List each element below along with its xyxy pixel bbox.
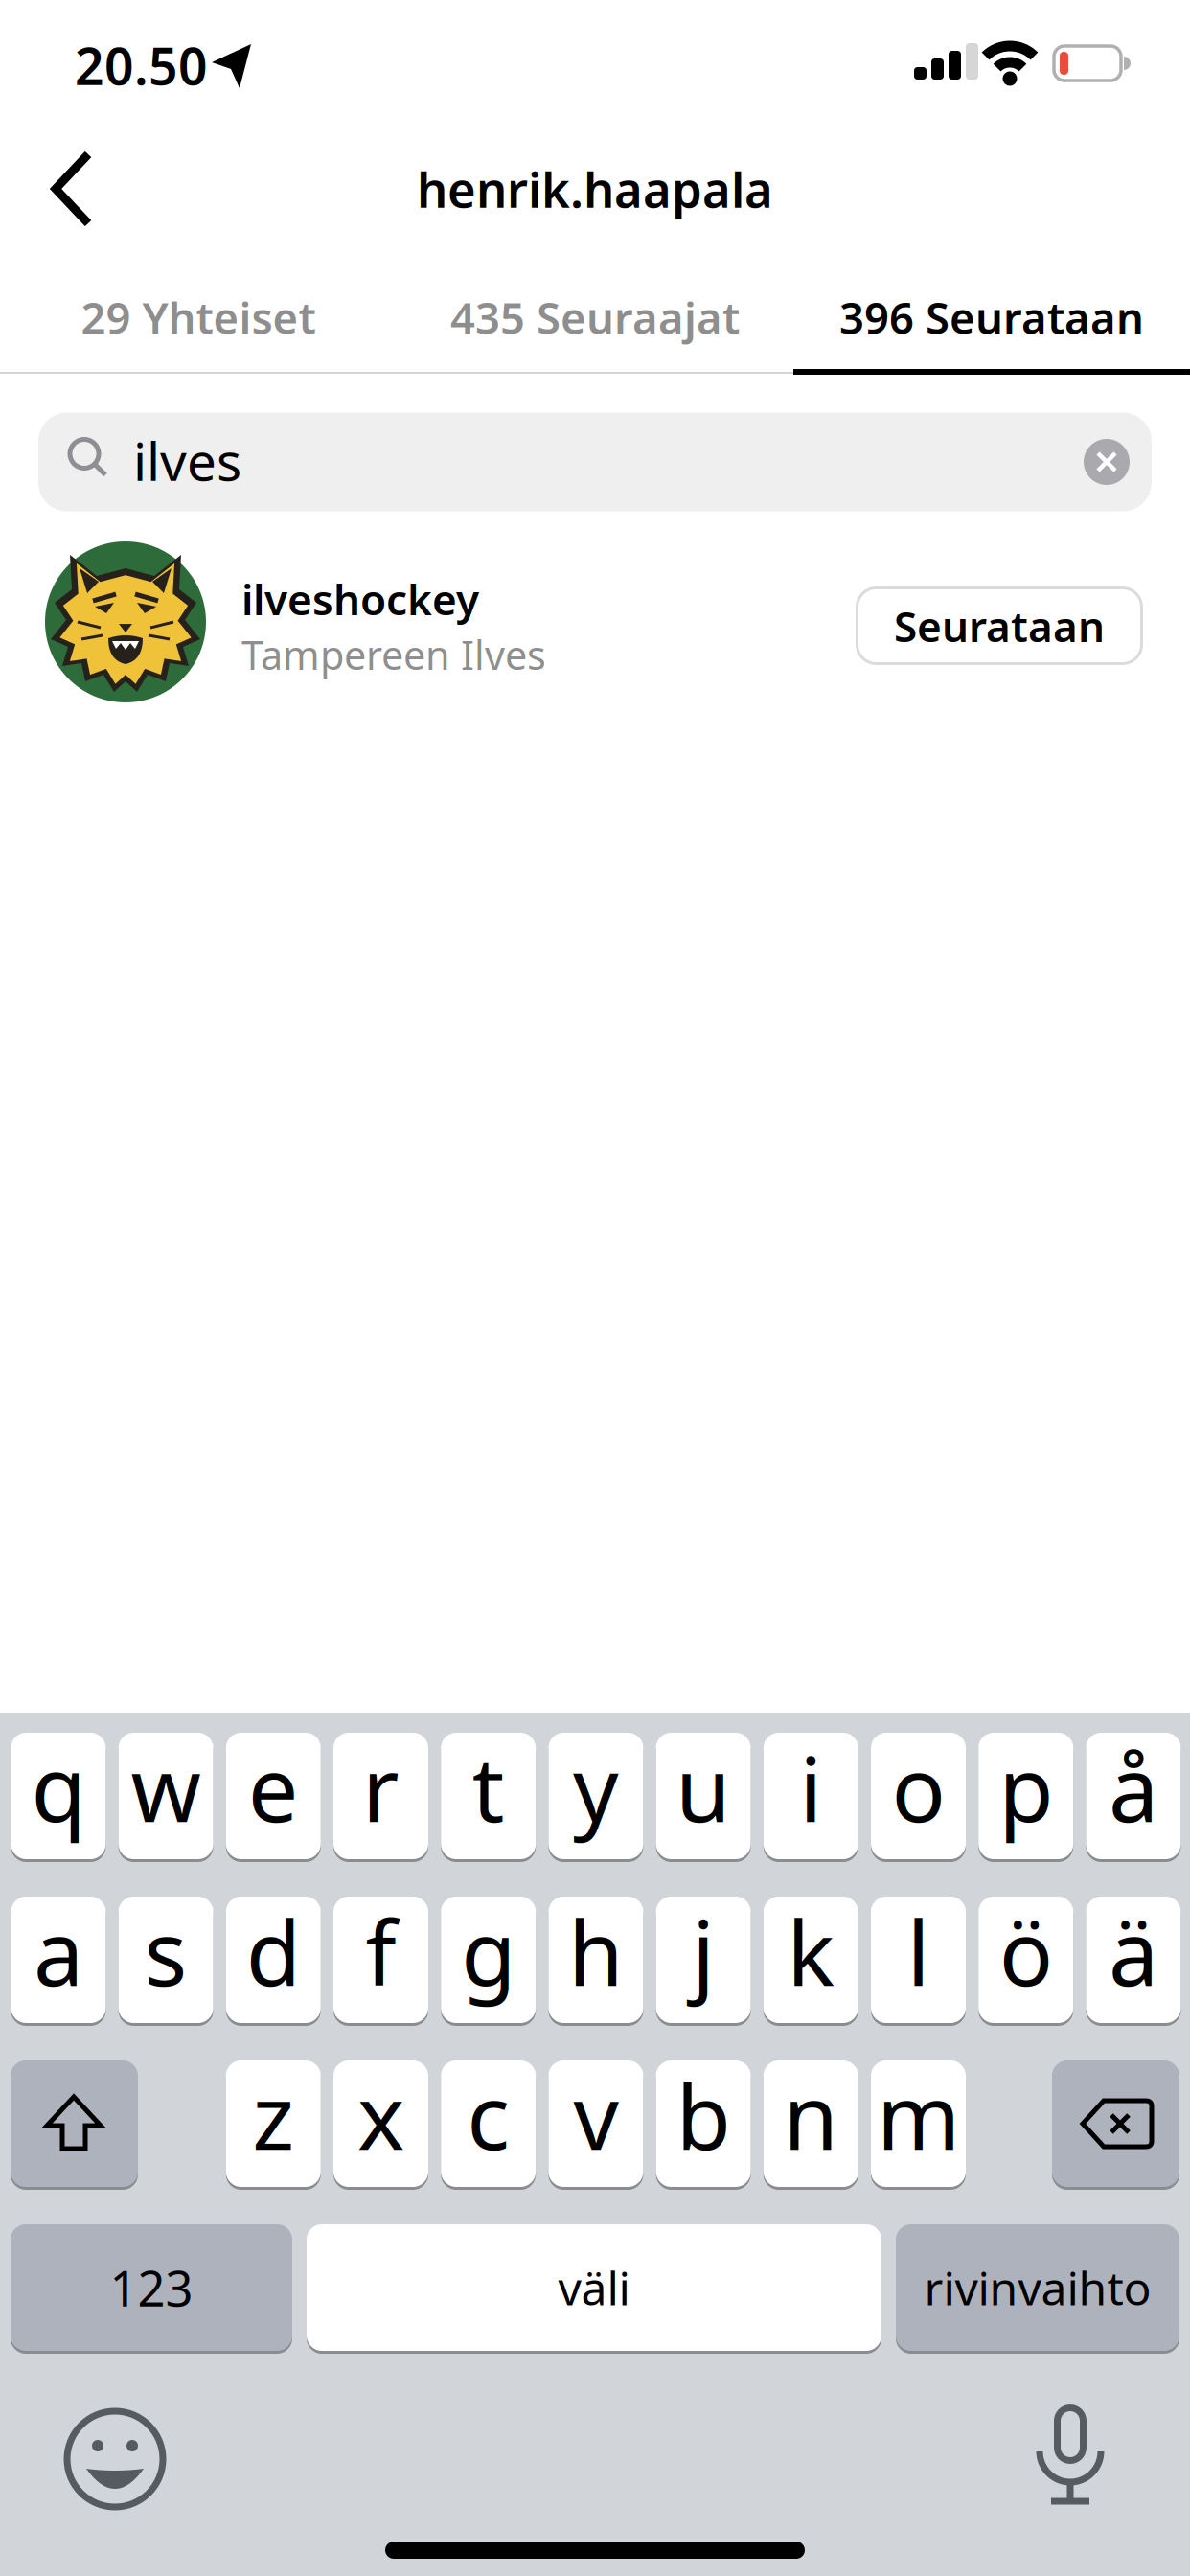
staticText: rivinvaihto [924, 2257, 1151, 2318]
button[interactable]: å [1086, 1731, 1181, 1861]
staticText: u [676, 1728, 731, 1847]
staticText: b [676, 2056, 731, 2174]
button[interactable]: ö [978, 1895, 1073, 2025]
button[interactable]: w [118, 1731, 213, 1861]
button[interactable]: h [548, 1895, 643, 2025]
button[interactable]: u [656, 1731, 751, 1861]
button[interactable]: Search [38, 413, 1152, 511]
staticText: ilveshockey [241, 571, 479, 627]
staticText: g [461, 1892, 516, 2010]
staticText: z [252, 2056, 294, 2174]
button[interactable]: d [226, 1895, 321, 2025]
button[interactable]: Back [0, 0, 144, 134]
staticText: n [783, 2056, 839, 2174]
staticText: e [248, 1728, 299, 1847]
staticText: x [357, 2056, 404, 2174]
staticText: q [31, 1728, 86, 1847]
button[interactable]: Dictation [1013, 2402, 1128, 2517]
staticText: h [568, 1892, 624, 2010]
button[interactable]: Shift [11, 2058, 138, 2189]
staticText: f [366, 1892, 396, 2010]
button[interactable]: 29 Yhteiset [0, 264, 397, 370]
staticText: d [246, 1892, 301, 2010]
staticText: a [33, 1892, 83, 2010]
button[interactable]: l [871, 1895, 966, 2025]
staticText: c [467, 2056, 510, 2174]
button[interactable]: 435 Seuraajat [397, 264, 793, 370]
staticText: w [131, 1728, 201, 1847]
staticText: 29 Yhteiset [81, 288, 316, 346]
staticText: 123 [110, 2255, 193, 2320]
button[interactable]: ilveshockey [38, 538, 834, 706]
staticText: y [573, 1728, 619, 1847]
button[interactable]: j [656, 1895, 751, 2025]
button[interactable]: c [441, 2058, 536, 2189]
button[interactable]: s [118, 1895, 213, 2025]
button[interactable]: 123 [11, 2222, 292, 2353]
staticText: väli [558, 2257, 630, 2318]
button[interactable]: q [11, 1731, 106, 1861]
staticText: l [907, 1892, 930, 2010]
staticText: 20.50 [75, 31, 208, 99]
button[interactable]: a [11, 1895, 106, 2025]
button[interactable]: r [333, 1731, 428, 1861]
staticText: t [472, 1728, 505, 1847]
staticText: Seurataan [894, 598, 1105, 654]
button[interactable]: f [333, 1895, 428, 2025]
button[interactable]: e [226, 1731, 321, 1861]
button[interactable]: z [226, 2058, 321, 2189]
staticText: j [692, 1892, 715, 2010]
button[interactable]: n [763, 2058, 858, 2189]
staticText: å [1108, 1728, 1158, 1847]
button[interactable]: Seurataan [856, 586, 1143, 665]
button[interactable]: 396 Seurataan [793, 264, 1190, 370]
staticText: o [892, 1728, 945, 1847]
button[interactable]: b [656, 2058, 751, 2189]
button[interactable]: Clear search [1078, 433, 1135, 491]
button[interactable]: x [333, 2058, 428, 2189]
staticText: ilves [133, 426, 241, 495]
staticText: 396 Seurataan [839, 288, 1144, 346]
button[interactable]: t [441, 1731, 536, 1861]
button[interactable]: k [763, 1895, 858, 2025]
button[interactable]: i [763, 1731, 858, 1861]
button[interactable]: ä [1086, 1895, 1181, 2025]
button[interactable]: y [548, 1731, 643, 1861]
staticText: Tampereen Ilves [241, 628, 546, 681]
button[interactable]: m [871, 2058, 966, 2189]
button[interactable]: Delete [1052, 2058, 1179, 2189]
button[interactable]: o [871, 1731, 966, 1861]
staticText: ä [1108, 1892, 1158, 2010]
staticText: v [573, 2056, 618, 2174]
staticText: p [999, 1728, 1053, 1847]
staticText: ö [999, 1892, 1053, 2010]
button[interactable]: g [441, 1895, 536, 2025]
staticText: k [787, 1892, 835, 2010]
staticText: m [877, 2056, 960, 2174]
button[interactable]: v [548, 2058, 643, 2189]
button[interactable]: Emoji [57, 2402, 172, 2517]
staticText: s [144, 1892, 187, 2010]
button[interactable]: väli [307, 2222, 881, 2353]
staticText: i [799, 1728, 822, 1847]
staticText: r [362, 1728, 400, 1847]
button[interactable]: p [978, 1731, 1073, 1861]
button[interactable]: rivinvaihto [896, 2222, 1179, 2353]
staticText: henrik.haapala [417, 157, 773, 221]
staticText: 435 Seuraajat [450, 288, 740, 346]
